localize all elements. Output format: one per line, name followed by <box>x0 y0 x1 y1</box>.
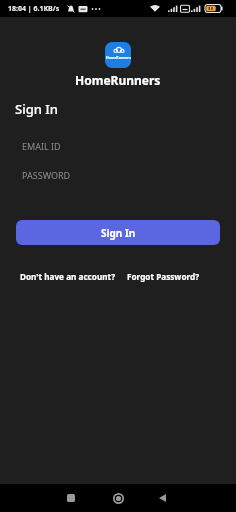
staticText: 18:04 | 6.1KB/s <box>8 4 60 14</box>
button[interactable] <box>59 486 83 510</box>
button[interactable]: Forgot Password? <box>127 271 200 282</box>
staticText: HomeRunners <box>106 55 131 60</box>
staticText: HomeRunners <box>75 72 161 88</box>
staticText: Sign In <box>15 100 59 118</box>
button[interactable] <box>106 486 130 510</box>
button[interactable] <box>150 486 174 510</box>
staticText: EMAIL ID <box>22 140 61 152</box>
staticText: PASSWORD <box>22 169 71 181</box>
button[interactable]: Don't have an account? <box>20 271 116 282</box>
button[interactable]: Sign In <box>16 220 220 245</box>
staticText: Sign In <box>101 226 136 240</box>
